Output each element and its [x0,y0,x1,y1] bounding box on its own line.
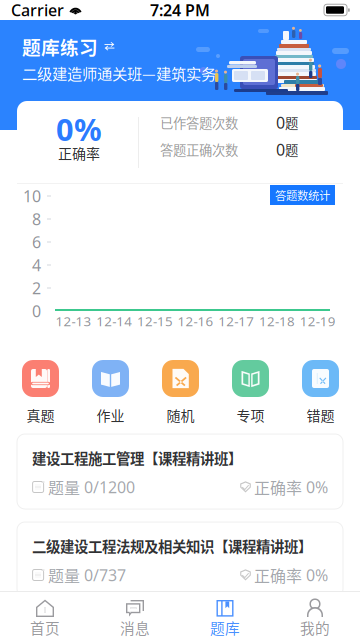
staticText: 答题正确次数 [160,140,238,159]
staticText: 6 [32,231,41,253]
staticText: 题 [285,113,298,132]
button[interactable]: 作业 [75,360,145,422]
staticText: 题库练习 [22,33,98,60]
staticText: 0 [276,139,285,160]
staticText: 0% [306,476,328,498]
staticText: 0 [276,112,285,133]
staticText: 0% [56,109,102,149]
staticText: 题库 [210,617,240,638]
staticText: 作业 [96,405,124,425]
staticText: 8 [32,208,41,230]
staticText: 0/1200 [84,476,135,498]
staticText: 二级建造师通关班—建筑实务 [22,62,216,84]
button[interactable]: 专项 [215,360,285,422]
staticText: 0% [306,564,328,586]
staticText: 随机 [166,405,194,425]
button[interactable]: 消息 [90,591,180,640]
staticText: 题量 [48,563,80,587]
button[interactable]: 建设工程施工管理【课程精讲班】 [17,434,343,509]
staticText: 二级建设工程法规及相关知识【课程精讲班】 [32,536,312,556]
staticText: 0/737 [84,564,126,586]
staticText: 我的 [300,617,330,638]
staticText: 错题 [306,405,334,425]
staticText: 0 [32,300,41,322]
staticText: 建设工程施工管理【课程精讲班】 [32,448,242,468]
staticText: 12-16 [178,312,214,330]
button[interactable]: 真题 [5,360,75,422]
staticText: 已作答题次数 [160,113,238,132]
staticText: 12-15 [137,312,173,330]
staticText: 7:24 PM [150,0,210,21]
staticText: 正确率 [254,563,302,587]
button[interactable]: 首页 [0,591,90,640]
button[interactable]: 答题数统计 [270,185,335,205]
staticText: 12-18 [259,312,295,330]
staticText: 专项 [236,405,264,425]
staticText: Carrier [11,0,64,21]
button[interactable]: 错题 [285,360,355,422]
staticText: 正确率 [58,143,100,163]
staticText: 首页 [30,617,60,638]
button[interactable]: 我的 [270,591,360,640]
staticText: 12-17 [218,312,254,330]
button[interactable]: 题库 [180,591,270,640]
staticText: 答题数统计 [275,187,330,203]
staticText: 10 [23,185,41,207]
staticText: 12-19 [300,312,336,330]
staticText: 题 [285,140,298,159]
button[interactable]: 随机 [145,360,215,422]
staticText: 12-14 [96,312,132,330]
staticText: 12-13 [55,312,91,330]
staticText: 消息 [120,617,150,638]
staticText: 正确率 [254,475,302,499]
staticText: 4 [32,254,41,276]
button[interactable]: 二级建设工程法规及相关知识【课程精讲班】 [17,522,343,597]
staticText: 2 [32,277,41,299]
staticText: 题量 [48,475,80,499]
staticText: 真题 [26,405,54,425]
